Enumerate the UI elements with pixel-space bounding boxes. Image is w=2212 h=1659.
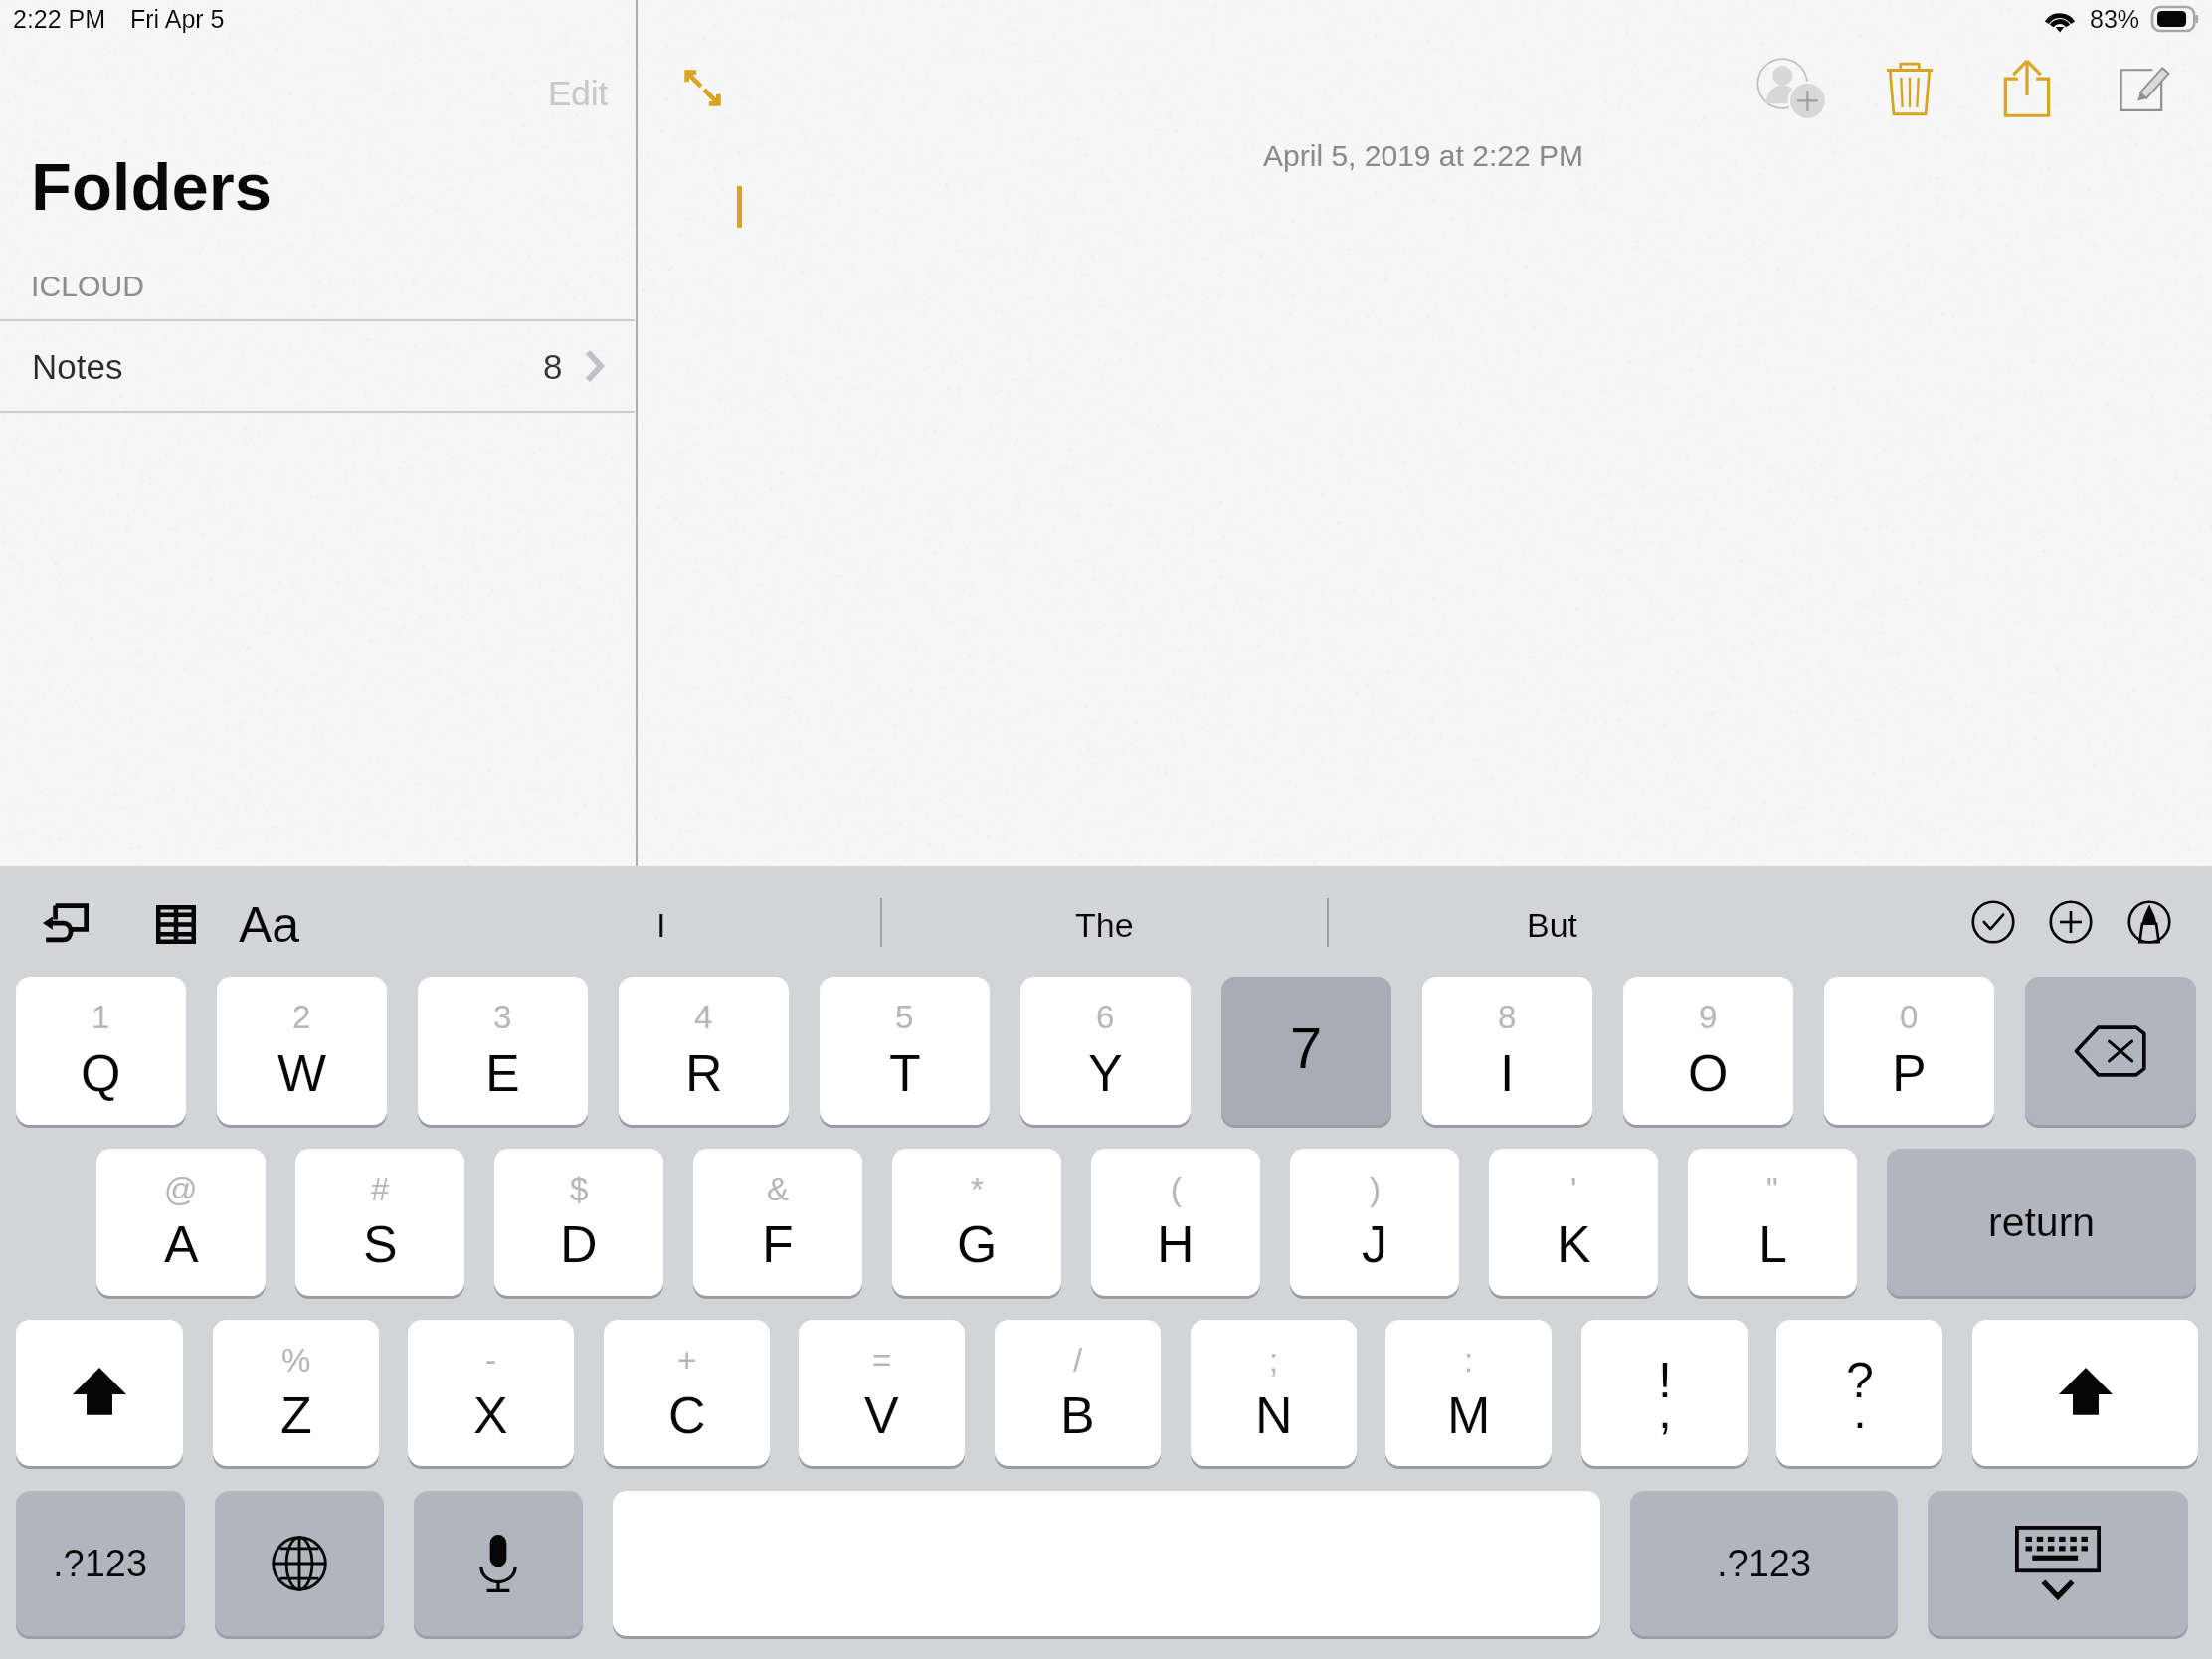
staticText: .: [1853, 1383, 1867, 1439]
staticText: return: [1988, 1199, 2096, 1245]
button[interactable]: return: [1887, 1149, 2196, 1296]
button[interactable]: Edit: [524, 60, 633, 126]
button[interactable]: @: [96, 1149, 266, 1296]
staticText: -: [485, 1342, 496, 1379]
button[interactable]: 8: [1422, 977, 1592, 1125]
button[interactable]: Expand: [655, 41, 749, 134]
button[interactable]: ": [1688, 1149, 1857, 1296]
button[interactable]: &: [693, 1149, 862, 1296]
staticText: But: [1527, 906, 1578, 944]
button[interactable]: -: [408, 1320, 574, 1466]
staticText: ?: [1846, 1353, 1874, 1408]
button[interactable]: Undo: [21, 880, 108, 968]
button[interactable]: ?: [1776, 1320, 1942, 1466]
button[interactable]: =: [799, 1320, 965, 1466]
staticText: O: [1688, 1044, 1729, 1102]
staticText: Notes: [32, 347, 123, 386]
button[interactable]: Add People: [1734, 30, 1851, 147]
button[interactable]: ;: [1191, 1320, 1357, 1466]
button[interactable]: 9: [1623, 977, 1793, 1125]
staticText: @: [164, 1171, 198, 1207]
button[interactable]: Table: [132, 880, 220, 968]
button[interactable]: 5: [820, 977, 990, 1125]
button[interactable]: Backspace: [2025, 977, 2196, 1125]
button[interactable]: ): [1290, 1149, 1459, 1296]
button[interactable]: Markup: [2112, 884, 2187, 960]
staticText: +: [677, 1342, 697, 1379]
button[interactable]: !: [1581, 1320, 1748, 1466]
staticText: P: [1892, 1044, 1927, 1102]
staticText: ): [1370, 1171, 1381, 1207]
staticText: K: [1557, 1215, 1591, 1273]
button[interactable]: $: [494, 1149, 663, 1296]
staticText: .?123: [53, 1543, 148, 1584]
staticText: ": [1766, 1171, 1778, 1207]
staticText: C: [668, 1386, 706, 1444]
button[interactable]: Aa: [221, 877, 318, 973]
button[interactable]: 3: [418, 977, 588, 1125]
button[interactable]: Share: [1968, 30, 2086, 147]
button[interactable]: #: [295, 1149, 464, 1296]
button[interactable]: 2: [217, 977, 387, 1125]
button[interactable]: Shift: [1972, 1320, 2198, 1466]
button[interactable]: New Note: [2086, 30, 2203, 147]
button[interactable]: .?123: [16, 1491, 185, 1636]
button[interactable]: /: [995, 1320, 1161, 1466]
button[interactable]: Delete: [1851, 30, 1968, 147]
staticText: Z: [280, 1386, 312, 1444]
button[interactable]: %: [213, 1320, 379, 1466]
staticText: 83%: [2090, 5, 2140, 33]
staticText: Folders: [31, 149, 272, 224]
button[interactable]: 1: [16, 977, 186, 1125]
button[interactable]: :: [1385, 1320, 1552, 1466]
staticText: Edit: [548, 74, 609, 112]
button[interactable]: Hide keyboard: [1928, 1491, 2188, 1636]
staticText: 5: [895, 999, 914, 1035]
button[interactable]: Notes: [0, 320, 635, 412]
staticText: 7: [1290, 1015, 1323, 1080]
staticText: ;: [1269, 1342, 1279, 1379]
staticText: :: [1464, 1342, 1474, 1379]
button[interactable]: 6: [1020, 977, 1191, 1125]
staticText: #: [371, 1171, 390, 1207]
staticText: 2: [292, 999, 311, 1035]
button[interactable]: Dictate: [414, 1491, 583, 1636]
button[interactable]: Switch keyboard: [215, 1491, 384, 1636]
button[interactable]: But: [1433, 866, 1672, 983]
button[interactable]: *: [892, 1149, 1061, 1296]
staticText: 2:22 PM: [13, 5, 106, 33]
button[interactable]: ': [1489, 1149, 1658, 1296]
button[interactable]: +: [604, 1320, 770, 1466]
staticText: The: [1075, 906, 1134, 944]
button[interactable]: Insert: [2033, 884, 2109, 960]
staticText: /: [1073, 1342, 1083, 1379]
staticText: *: [971, 1171, 984, 1207]
staticText: H: [1157, 1215, 1195, 1273]
button[interactable]: .?123: [1630, 1491, 1898, 1636]
button[interactable]: 7: [1221, 977, 1391, 1125]
button[interactable]: (: [1091, 1149, 1260, 1296]
staticText: Y: [1088, 1044, 1123, 1102]
staticText: D: [560, 1215, 598, 1273]
staticText: X: [473, 1386, 508, 1444]
staticText: =: [872, 1342, 892, 1379]
staticText: Q: [81, 1044, 121, 1102]
staticText: ': [1570, 1171, 1577, 1207]
button[interactable]: Checklist: [1955, 884, 2031, 960]
staticText: V: [864, 1386, 899, 1444]
button[interactable]: The: [985, 866, 1223, 983]
staticText: W: [277, 1044, 327, 1102]
staticText: &: [767, 1171, 790, 1207]
button[interactable]: 4: [619, 977, 789, 1125]
staticText: E: [485, 1044, 520, 1102]
staticText: L: [1758, 1215, 1787, 1273]
staticText: 0: [1900, 999, 1919, 1035]
button[interactable]: I: [542, 866, 781, 983]
button[interactable]: Shift: [16, 1320, 183, 1466]
button[interactable]: 0: [1824, 977, 1994, 1125]
staticText: 4: [694, 999, 713, 1035]
staticText: (: [1171, 1171, 1182, 1207]
staticText: 8: [543, 347, 563, 386]
staticText: G: [957, 1215, 998, 1273]
